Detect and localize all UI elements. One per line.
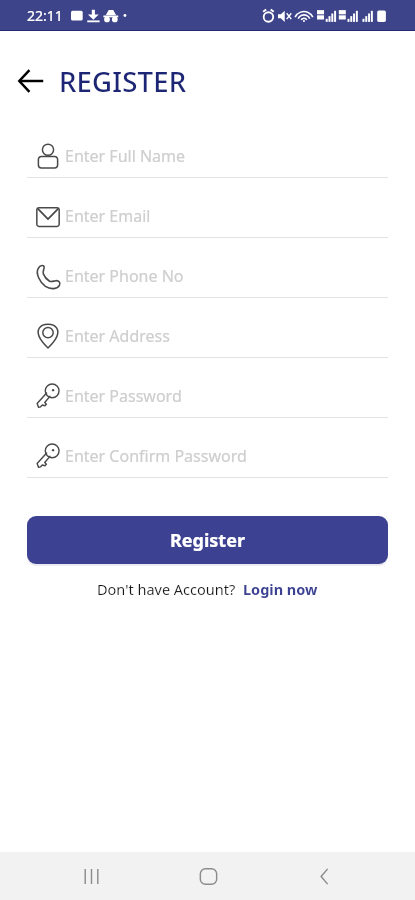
- button[interactable]: Enter Full Name: [27, 134, 388, 177]
- button[interactable]: Back: [16, 66, 46, 96]
- staticText: Enter Email: [65, 205, 151, 227]
- button[interactable]: Enter Confirm Password: [27, 434, 388, 477]
- button[interactable]: Enter Password: [27, 374, 388, 417]
- button[interactable]: Enter Phone No: [27, 254, 388, 297]
- staticText: Enter Full Name: [65, 145, 186, 167]
- button[interactable]: Login now: [243, 579, 318, 599]
- button[interactable]: Back: [298, 852, 350, 900]
- button[interactable]: Recent apps: [65, 852, 117, 900]
- staticText: Don't have Account?: [97, 579, 236, 599]
- staticText: Enter Confirm Password: [65, 445, 247, 467]
- button[interactable]: Enter Address: [27, 314, 388, 357]
- button[interactable]: Home: [182, 852, 234, 900]
- button[interactable]: Enter Email: [27, 194, 388, 237]
- button[interactable]: Register: [27, 516, 388, 564]
- staticText: Enter Address: [65, 325, 170, 347]
- staticText: Register: [170, 528, 245, 553]
- staticText: Enter Phone No: [65, 265, 184, 287]
- staticText: REGISTER: [59, 63, 187, 100]
- staticText: Login now: [243, 579, 318, 599]
- staticText: Enter Password: [65, 385, 182, 407]
- staticText: 22:11: [27, 6, 63, 25]
